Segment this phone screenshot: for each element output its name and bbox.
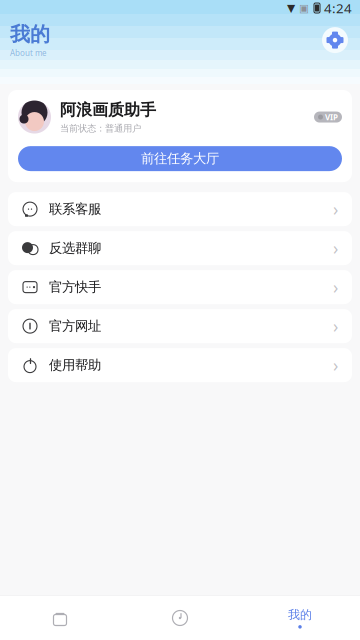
staticText: 联系客服 [49,201,101,217]
staticText: 前往任务大厅 [141,150,219,167]
staticText: About me [10,48,47,58]
button[interactable]: 联系客服 [8,192,352,226]
button[interactable]: 我的 [240,596,360,640]
staticText: 4:24 [324,0,352,17]
staticText: 我的 [288,607,312,622]
button[interactable]: 设置 [318,23,352,57]
staticText: 当前状态：普通用户 [60,123,141,134]
staticText: 官方快手 [49,279,101,295]
staticText: › [333,315,338,338]
staticText: 官方网址 [49,318,101,334]
button[interactable]: 前往任务大厅 [18,146,342,171]
staticText: › [333,276,338,299]
staticText: › [333,237,338,260]
staticText: VIP [325,112,338,122]
button[interactable]: 反选群聊 [8,231,352,265]
staticText: 使用帮助 [49,357,101,373]
button[interactable]: 官方快手 [8,270,352,304]
button[interactable]: 发现 [120,596,240,640]
button[interactable]: 首页 [0,596,120,640]
staticText: 我的 [10,22,50,47]
staticText: 阿浪画质助手 [60,100,156,120]
staticText: ▼ [287,2,295,14]
staticText: 反选群聊 [49,240,101,256]
button[interactable]: 使用帮助 [8,348,352,382]
staticText: › [333,198,338,221]
staticText: ▣ [299,2,309,14]
staticText: › [333,354,338,377]
button[interactable]: 官方网址 [8,309,352,343]
